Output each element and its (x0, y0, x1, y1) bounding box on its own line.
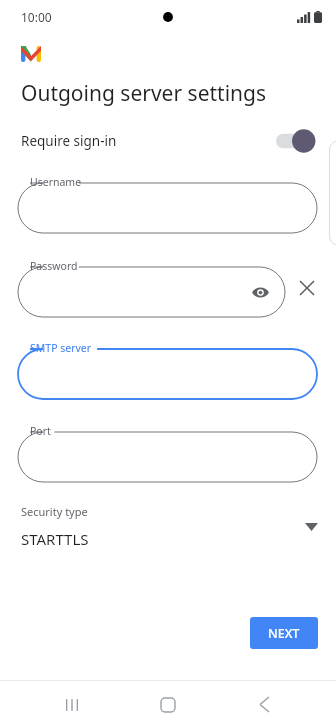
staticText: Username (30, 175, 82, 189)
staticText: NEXT (268, 625, 300, 642)
button[interactable]: Port (18, 424, 317, 482)
staticText: Security type (21, 504, 88, 519)
staticText: Outgoing server settings (21, 79, 267, 108)
staticText: Require sign-in (21, 132, 117, 150)
button[interactable]: Username (18, 175, 317, 233)
staticText: SMTP server (30, 341, 92, 355)
staticText: STARTTLS (21, 529, 89, 549)
staticText: 10:00 (21, 9, 52, 25)
staticText: Port (30, 424, 51, 438)
button[interactable]: Security type (0, 504, 336, 549)
staticText: Password (30, 259, 78, 273)
button[interactable]: SMTP server (18, 341, 317, 399)
button[interactable]: Password (18, 259, 285, 317)
button[interactable]: Clear password (290, 271, 324, 305)
button[interactable]: Recents (48, 681, 96, 728)
button[interactable]: Require sign-in toggle (276, 128, 318, 154)
button[interactable]: Require sign-in (0, 122, 336, 160)
button[interactable]: Back (240, 681, 288, 728)
button[interactable]: NEXT (250, 617, 318, 649)
button[interactable]: Show password (247, 279, 273, 305)
button[interactable]: Home (144, 681, 192, 728)
